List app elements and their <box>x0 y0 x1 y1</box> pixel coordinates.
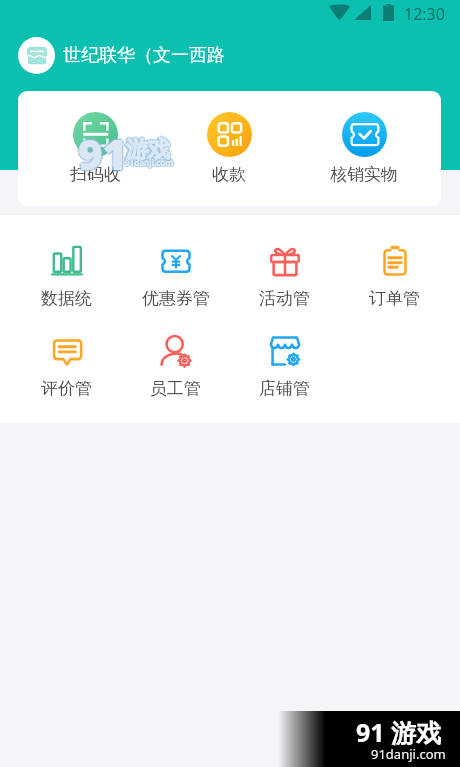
staticText: 员工管 <box>150 378 201 399</box>
staticText: 游戏 <box>127 135 171 163</box>
staticText: 游戏 <box>124 137 168 165</box>
button[interactable]: 订单管 <box>340 246 449 309</box>
staticText: 91 <box>79 126 129 183</box>
staticText: 91 <box>78 125 128 182</box>
staticText: 91 <box>76 125 126 182</box>
button[interactable]: 活动管 <box>230 246 339 309</box>
staticText: 活动管 <box>259 288 310 309</box>
staticText: 游戏 <box>126 134 170 162</box>
staticText: 店铺管 <box>259 378 310 399</box>
button[interactable]: 评价管 <box>12 336 121 399</box>
staticText: 91 游戏 <box>356 715 442 749</box>
staticText: 核销实物 <box>330 164 398 185</box>
button[interactable]: 数据统 <box>12 246 121 309</box>
button[interactable]: 店铺管 <box>230 336 339 399</box>
button[interactable]: 员工管 <box>121 336 230 399</box>
staticText: 91danji.com <box>123 157 172 168</box>
staticText: 数据统 <box>41 288 92 309</box>
staticText: 91 <box>77 124 127 181</box>
staticText: 收款 <box>212 164 246 185</box>
staticText: 91 <box>77 126 127 183</box>
button[interactable]: 优惠券管 <box>121 246 230 309</box>
staticText: 评价管 <box>41 378 92 399</box>
staticText: 订单管 <box>369 288 420 309</box>
staticText: 优惠券管 <box>142 288 210 309</box>
staticText: 91danji.com <box>125 158 174 169</box>
staticText: 91danji.com <box>126 155 175 166</box>
staticText: 91 <box>78 123 128 180</box>
staticText: 91danji.com <box>371 745 446 763</box>
staticText: 游戏 <box>126 138 170 166</box>
staticText: 91 <box>80 125 130 182</box>
button[interactable]: Store <box>18 37 55 74</box>
staticText: 游戏 <box>124 135 168 163</box>
staticText: 91 <box>79 124 129 181</box>
staticText: 91danji.com <box>124 158 173 169</box>
staticText: 世纪联华（文一西路 <box>63 44 225 67</box>
staticText: 游戏 <box>127 137 171 165</box>
staticText: 游戏 <box>127 136 171 164</box>
button[interactable]: 核销实物 <box>296 91 432 206</box>
staticText: 91danji.com <box>125 157 174 168</box>
staticText: 12:30 <box>404 3 445 25</box>
staticText: 91danji.com <box>124 155 173 166</box>
button[interactable]: 收款 <box>161 91 297 206</box>
button[interactable]: 扫码收 <box>27 91 163 206</box>
staticText: 游戏 <box>124 136 168 164</box>
staticText: 91danji.com <box>126 158 175 169</box>
staticText: 91 <box>78 127 128 184</box>
staticText: 91danji.com <box>127 157 176 168</box>
staticText: 游戏 <box>126 136 170 164</box>
staticText: 扫码收 <box>70 164 121 185</box>
staticText: 91danji.com <box>125 155 174 166</box>
